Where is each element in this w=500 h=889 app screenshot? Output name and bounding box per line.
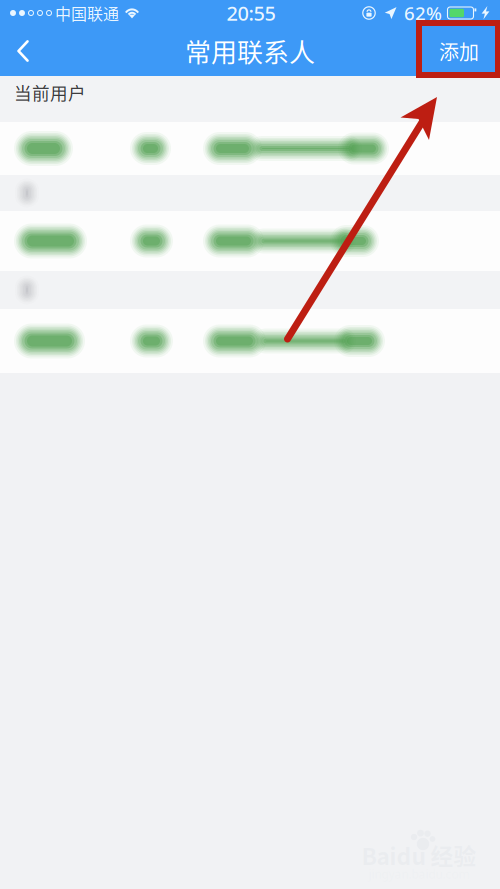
staticText: 常用联系人: [185, 32, 315, 70]
button[interactable]: 添加: [418, 26, 500, 76]
button[interactable]: Back: [0, 26, 46, 76]
staticText: 62%: [404, 1, 442, 25]
staticText: 添加: [439, 36, 479, 65]
staticText: 当前用户: [14, 79, 86, 105]
button[interactable]: [0, 211, 500, 271]
button[interactable]: [0, 122, 500, 175]
staticText: 20:55: [226, 0, 275, 26]
staticText: 中国联通: [55, 1, 119, 25]
button[interactable]: [0, 309, 500, 373]
